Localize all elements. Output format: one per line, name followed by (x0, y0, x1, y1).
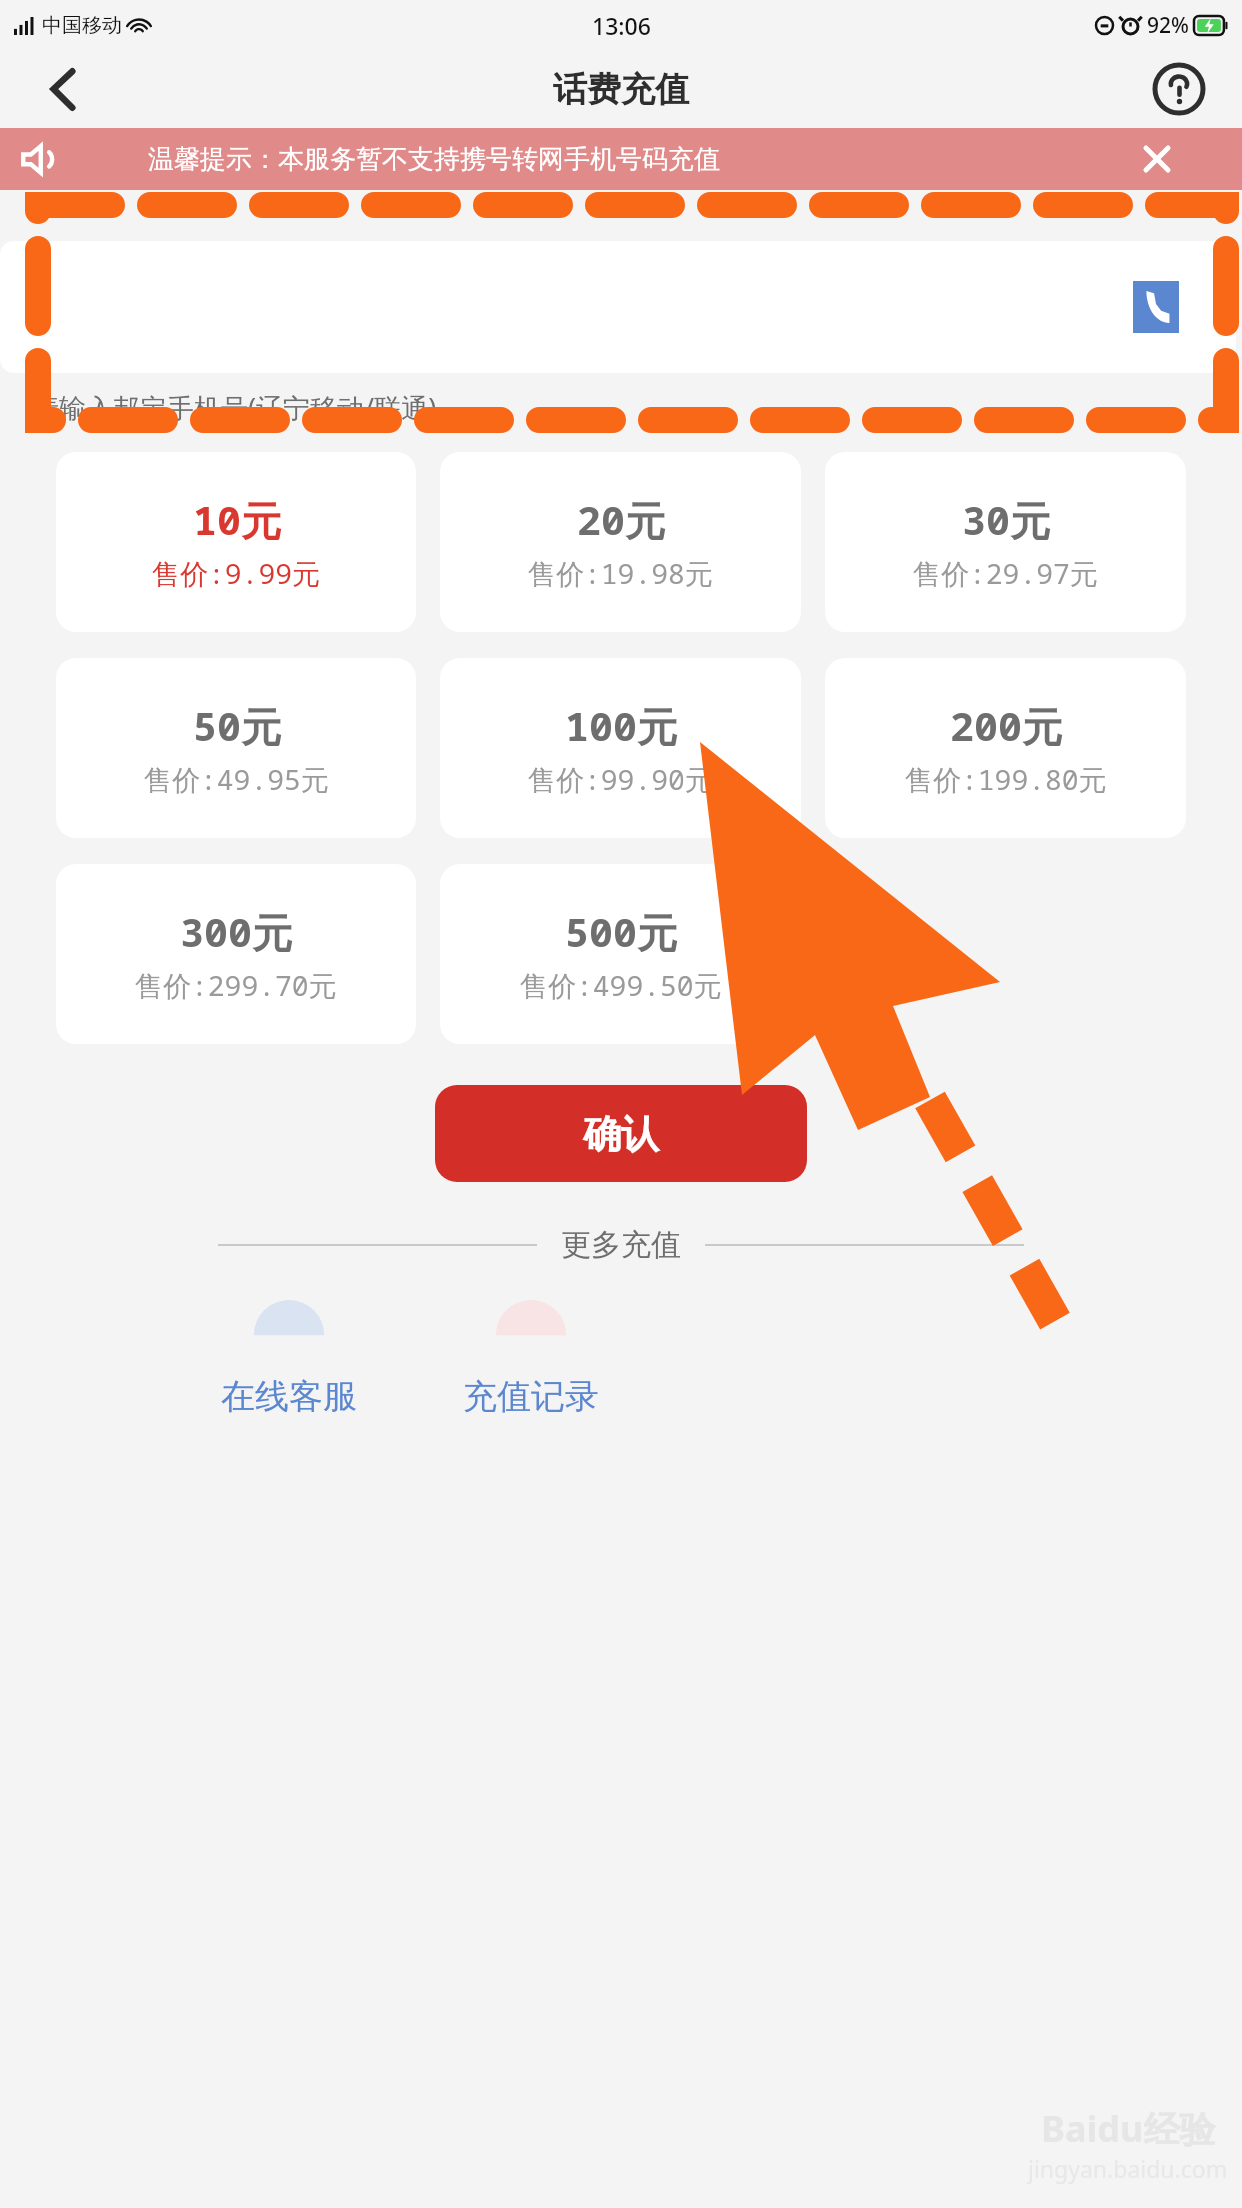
staticText: 100元 (565, 698, 677, 753)
staticText: 300元 (180, 904, 292, 959)
staticText: 20元 (577, 492, 665, 547)
staticText: 售价:499.50元 (520, 966, 722, 1004)
staticText: 请输入邦定手机号(辽宁移动/联通) (32, 389, 437, 426)
staticText: 30元 (962, 492, 1050, 547)
other: Notice (21, 140, 59, 178)
staticText: 售价:19.98元 (528, 554, 713, 592)
staticText: 200元 (950, 698, 1062, 753)
staticText: 更多充值 (561, 1226, 681, 1264)
button[interactable]: Contacts (0, 241, 1236, 373)
button[interactable]: 500元 (440, 864, 801, 1044)
button[interactable]: 200元 (825, 658, 1186, 838)
staticText: 确认 (583, 1110, 659, 1158)
staticText: 售价:299.70元 (135, 966, 337, 1004)
button[interactable]: Close (1134, 136, 1180, 182)
button[interactable]: 在线客服 (196, 1300, 382, 1418)
other: Contacts (1133, 281, 1179, 333)
button[interactable]: 充值记录 (438, 1300, 624, 1418)
button[interactable]: 30元 (825, 452, 1186, 632)
staticText: 售价:99.90元 (528, 760, 713, 798)
button[interactable]: 100元 (440, 658, 801, 838)
button[interactable]: Help (1152, 62, 1206, 116)
staticText: 售价:49.95元 (144, 760, 329, 798)
staticText: 售价:29.97元 (913, 554, 1098, 592)
staticText: 充值记录 (463, 1375, 599, 1418)
staticText: 50元 (193, 698, 281, 753)
staticText: 在线客服 (221, 1375, 357, 1418)
button[interactable]: 20元 (440, 452, 801, 632)
staticText: 10元 (193, 492, 281, 547)
button[interactable]: Back (38, 63, 90, 115)
button[interactable]: 300元 (56, 864, 416, 1044)
staticText: 售价:9.99元 (152, 554, 321, 592)
staticText: 13:06 (592, 10, 651, 41)
staticText: 500元 (565, 904, 677, 959)
staticText: 温馨提示：本服务暂不支持携号转网手机号码充值 (148, 143, 720, 176)
button[interactable]: 确认 (435, 1085, 807, 1182)
staticText: 92% (1147, 11, 1189, 40)
staticText: 话费充值 (553, 68, 689, 111)
staticText: jingyan.baidu.com (1028, 2153, 1228, 2184)
button[interactable]: 50元 (56, 658, 416, 838)
staticText: 售价:199.80元 (905, 760, 1107, 798)
button[interactable]: 10元 (56, 452, 416, 632)
staticText: 中国移动 (42, 13, 122, 38)
staticText: Baidu经验 (1041, 2104, 1216, 2153)
